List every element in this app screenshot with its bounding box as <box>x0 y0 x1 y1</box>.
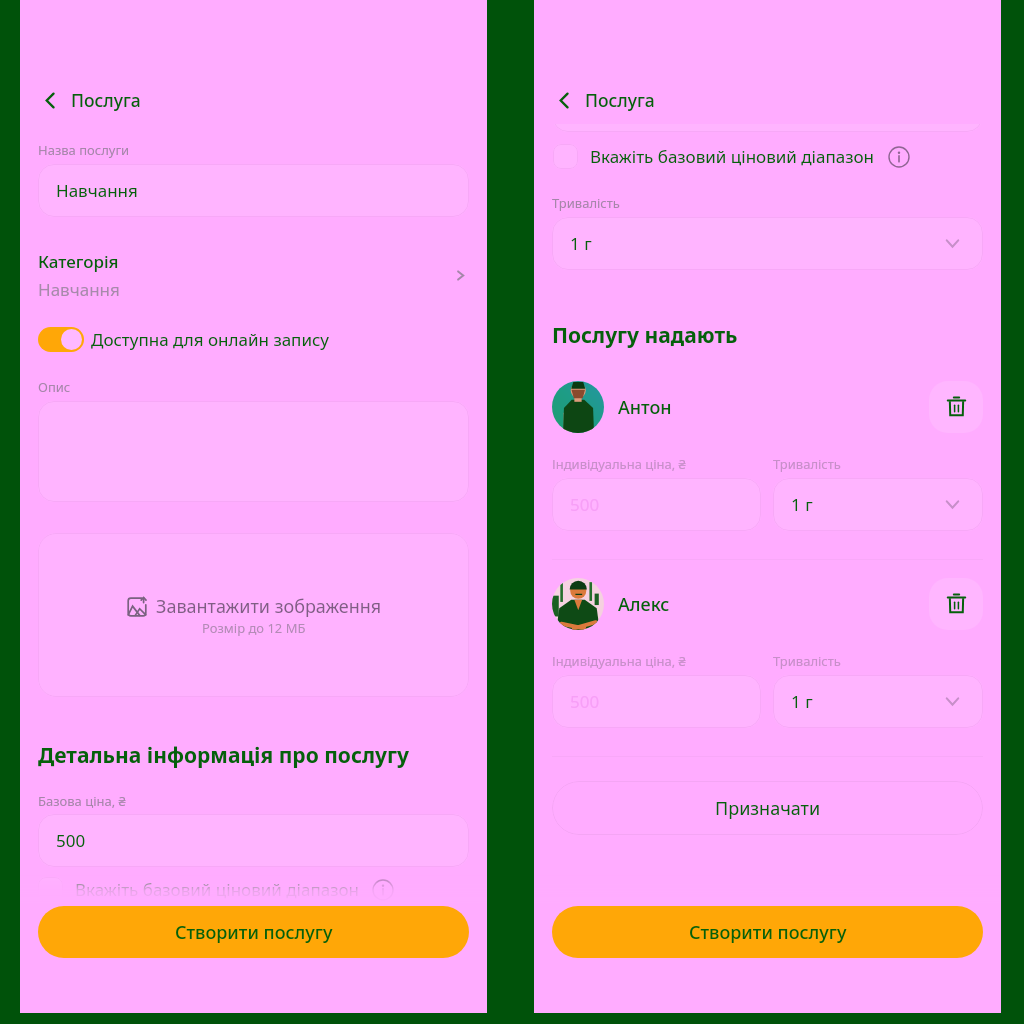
staticText: Послугу надають <box>552 321 738 350</box>
staticText: Опис <box>38 378 71 396</box>
staticText: Вкажіть базовий ціновий діапазон <box>75 878 360 901</box>
staticText: Антон <box>618 395 672 420</box>
button[interactable]: 1 г <box>552 217 983 270</box>
button[interactable]: Toggle online booking <box>38 327 84 352</box>
staticText: Послуга <box>585 88 655 112</box>
staticText: Категорія <box>38 250 119 273</box>
staticText: Створити послугу <box>689 920 847 945</box>
button[interactable]: Checkbox <box>553 144 578 169</box>
staticText: 1 г <box>570 232 592 255</box>
staticText: 1 г <box>791 493 813 516</box>
button[interactable]: Призначати <box>552 781 983 835</box>
staticText: Детальна інформація про послугу <box>38 741 409 770</box>
button[interactable]: 1 г <box>773 478 983 531</box>
staticText: Навчання <box>38 278 120 301</box>
staticText: Послуга <box>71 88 141 112</box>
staticText: Вкажіть базовий ціновий діапазон <box>590 145 875 168</box>
button[interactable]: Back <box>35 85 65 115</box>
staticText: Тривалість <box>773 652 841 670</box>
staticText: Назва послуги <box>38 141 130 159</box>
button[interactable]: Back <box>549 85 579 115</box>
button[interactable]: Створити послугу <box>552 906 983 958</box>
staticText: Тривалість <box>552 194 620 212</box>
button[interactable]: Завантажити зображення <box>38 533 469 697</box>
button[interactable]: Створити послугу <box>38 906 469 958</box>
staticText: Тривалість <box>773 455 841 473</box>
button[interactable]: Delete <box>929 578 983 630</box>
staticText: Створити послугу <box>175 920 333 945</box>
staticText: Індивідуальна ціна, ₴ <box>552 455 686 473</box>
button[interactable]: Навчання <box>38 164 469 217</box>
button[interactable]: Категорія <box>38 250 469 301</box>
button[interactable]: 500 <box>552 478 761 531</box>
staticText: Навчання <box>56 179 138 202</box>
staticText: 500 <box>56 829 86 852</box>
staticText: Алекс <box>618 592 670 617</box>
staticText: 1 г <box>791 690 813 713</box>
staticText: Призначати <box>715 796 821 821</box>
staticText: 500 <box>570 493 600 516</box>
staticText: Базова ціна, ₴ <box>38 792 126 810</box>
staticText: Індивідуальна ціна, ₴ <box>552 652 686 670</box>
button[interactable]: 500 <box>552 675 761 728</box>
staticText: Розмір до 12 МБ <box>202 619 306 637</box>
button[interactable]: Delete <box>929 381 983 433</box>
staticText: Завантажити зображення <box>156 594 382 619</box>
staticText: 500 <box>570 690 600 713</box>
button[interactable]: 500 <box>38 814 469 867</box>
staticText: Доступна для онлайн запису <box>91 328 330 351</box>
button[interactable]: 1 г <box>773 675 983 728</box>
